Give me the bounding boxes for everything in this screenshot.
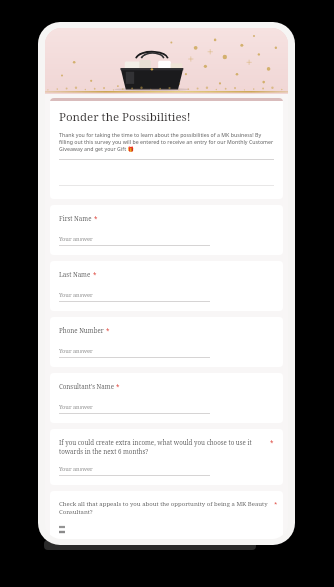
staticText: Last Name: [59, 270, 91, 278]
staticText: Phone Number: [59, 326, 104, 334]
button[interactable]: If you could create extra income, what w…: [50, 429, 283, 485]
staticText: *: [94, 214, 98, 222]
button[interactable]: Phone Number: [50, 317, 283, 367]
button[interactable]: Extra Income: [59, 524, 274, 529]
button[interactable]: First Name: [50, 205, 283, 255]
staticText: *: [106, 326, 110, 334]
staticText: Thank you for taking the time to learn a…: [59, 131, 274, 152]
staticText: Your answer: [59, 291, 93, 299]
staticText: Consultant's Name: [59, 382, 114, 390]
button[interactable]: Consultant's Name: [50, 373, 283, 423]
staticText: *: [270, 438, 274, 446]
staticText: Your answer: [59, 465, 93, 473]
staticText: Your answer: [59, 235, 93, 243]
staticText: Ponder the Possibilities!: [59, 109, 191, 125]
button[interactable]: Last Name: [50, 261, 283, 311]
staticText: Your answer: [59, 347, 93, 355]
staticText: *: [93, 270, 97, 278]
staticText: If you could create extra income, what w…: [59, 438, 262, 456]
staticText: First Name: [59, 214, 92, 222]
staticText: Check all that appeals to you about the …: [59, 500, 274, 516]
staticText: *: [116, 382, 120, 390]
staticText: Your answer: [59, 403, 93, 411]
